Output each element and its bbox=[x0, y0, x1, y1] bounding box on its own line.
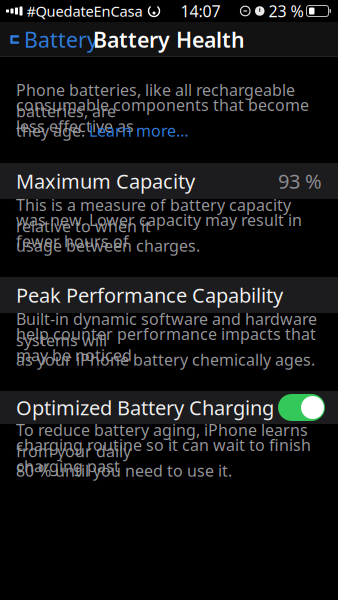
staticText: Peak Performance Capability bbox=[16, 282, 283, 308]
staticText: This is a measure of battery capacity re… bbox=[16, 194, 291, 237]
staticText: 93 % bbox=[278, 168, 322, 194]
staticText: 23 % bbox=[268, 0, 303, 22]
button[interactable]: Battery bbox=[0, 18, 98, 61]
staticText: Maximum Capacity bbox=[16, 168, 195, 194]
staticText: To reduce battery aging, iPhone learns f… bbox=[16, 419, 308, 462]
staticText: consumable components that become less e… bbox=[16, 94, 309, 137]
staticText: Battery Health bbox=[93, 25, 245, 54]
staticText: they age. bbox=[16, 120, 89, 141]
button[interactable]: Learn more… bbox=[89, 120, 189, 141]
staticText: Learn more… bbox=[89, 120, 189, 141]
staticText: Optimized Battery Charging bbox=[16, 394, 274, 421]
staticText: usage between charges. bbox=[16, 235, 200, 256]
staticText: was new. Lower capacity may result in fe… bbox=[16, 209, 302, 252]
button[interactable]: Maximum Capacity bbox=[0, 163, 338, 199]
staticText: help counter performance impacts that ma… bbox=[16, 323, 316, 366]
staticText: 14:07 bbox=[180, 0, 220, 22]
staticText: 80 % until you need to use it. bbox=[16, 460, 232, 481]
staticText: Built-in dynamic software and hardware s… bbox=[16, 308, 317, 351]
staticText: Phone batteries, like all rechargeable b… bbox=[16, 79, 295, 122]
button[interactable]: Peak Performance Capability bbox=[0, 277, 338, 313]
staticText: charging routine so it can wait to finis… bbox=[16, 434, 311, 477]
staticText: as your iPhone battery chemically ages. bbox=[16, 349, 315, 370]
staticText: Battery bbox=[24, 25, 98, 54]
button[interactable]: Optimized Battery Charging bbox=[0, 391, 338, 424]
staticText: #QuedateEnCasa bbox=[26, 1, 142, 21]
